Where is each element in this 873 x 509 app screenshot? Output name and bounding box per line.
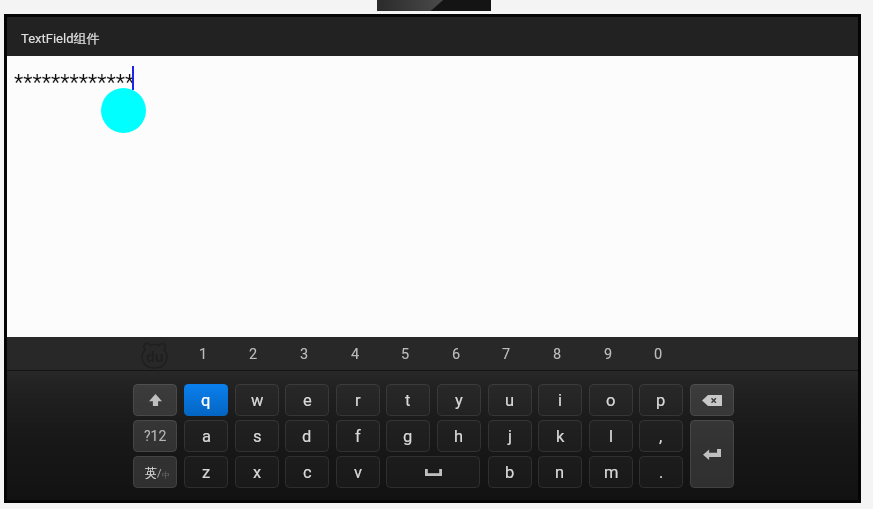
staticText: 5: [401, 346, 410, 363]
button[interactable]: l: [589, 420, 633, 452]
staticText: TextField组件: [21, 30, 100, 46]
staticText: h: [454, 427, 464, 446]
staticText: /: [157, 467, 162, 480]
staticText: 4: [351, 346, 360, 363]
staticText: a: [202, 427, 211, 446]
staticText: 中: [162, 470, 170, 480]
staticText: e: [303, 391, 312, 410]
button[interactable]: 8: [532, 337, 583, 371]
button[interactable]: o: [589, 384, 633, 416]
staticText: 1: [199, 346, 208, 363]
staticText: s: [253, 427, 262, 446]
staticText: 3: [300, 346, 309, 363]
staticText: .: [659, 463, 664, 482]
button[interactable]: v: [336, 456, 380, 488]
staticText: g: [403, 427, 413, 446]
button[interactable]: x: [235, 456, 279, 488]
button[interactable]: Shift: [133, 384, 177, 416]
staticText: 9: [604, 346, 613, 363]
button[interactable]: j: [488, 420, 532, 452]
staticText: c: [303, 463, 312, 482]
staticText: t: [405, 391, 411, 410]
button[interactable]: Enter: [690, 420, 734, 488]
button[interactable]: *************: [7, 56, 858, 337]
button[interactable]: g: [386, 420, 430, 452]
button[interactable]: Switch language: [133, 456, 177, 488]
button[interactable]: b: [488, 456, 532, 488]
staticText: o: [606, 391, 616, 410]
button[interactable]: 3: [279, 337, 330, 371]
button[interactable]: c: [285, 456, 329, 488]
button[interactable]: t: [386, 384, 430, 416]
staticText: 6: [452, 346, 461, 363]
button[interactable]: 1: [178, 337, 229, 371]
button[interactable]: ,: [639, 420, 683, 452]
staticText: p: [656, 391, 666, 410]
staticText: 英: [145, 465, 157, 480]
staticText: *************: [14, 70, 135, 95]
button[interactable]: TextField组件: [7, 17, 858, 56]
button[interactable]: h: [437, 420, 481, 452]
staticText: q: [201, 391, 211, 410]
staticText: ,: [659, 427, 663, 446]
button[interactable]: d: [285, 420, 329, 452]
staticText: v: [354, 463, 362, 482]
staticText: u: [505, 391, 515, 410]
button[interactable]: a: [184, 420, 228, 452]
button[interactable]: u: [488, 384, 532, 416]
staticText: i: [558, 391, 563, 410]
button[interactable]: 9: [583, 337, 634, 371]
button[interactable]: i: [538, 384, 582, 416]
staticText: z: [202, 463, 211, 482]
button[interactable]: 0: [633, 337, 684, 371]
button[interactable]: s: [235, 420, 279, 452]
button[interactable]: 5: [380, 337, 431, 371]
button[interactable]: p: [639, 384, 683, 416]
button[interactable]: Symbols: [133, 420, 177, 452]
button[interactable]: 6: [431, 337, 482, 371]
button[interactable]: y: [437, 384, 481, 416]
staticText: n: [555, 463, 565, 482]
button[interactable]: .: [639, 456, 683, 488]
staticText: d: [302, 427, 312, 446]
button[interactable]: e: [285, 384, 329, 416]
staticText: 0: [654, 346, 663, 363]
button[interactable]: w: [235, 384, 279, 416]
staticText: 7: [502, 346, 511, 363]
button[interactable]: z: [184, 456, 228, 488]
button[interactable]: 4: [330, 337, 381, 371]
staticText: j: [508, 427, 512, 446]
button[interactable]: m: [589, 456, 633, 488]
staticText: m: [604, 463, 619, 482]
button[interactable]: q: [184, 384, 228, 416]
button[interactable]: r: [336, 384, 380, 416]
staticText: ?12: [144, 428, 167, 444]
staticText: f: [355, 427, 361, 446]
staticText: k: [556, 427, 565, 446]
staticText: x: [253, 463, 262, 482]
button[interactable]: k: [538, 420, 582, 452]
staticText: b: [505, 463, 515, 482]
staticText: r: [355, 391, 361, 410]
button[interactable]: 7: [481, 337, 532, 371]
button[interactable]: Space: [386, 456, 480, 488]
staticText: w: [251, 391, 264, 410]
staticText: 8: [553, 346, 562, 363]
staticText: du: [146, 347, 164, 366]
button[interactable]: f: [336, 420, 380, 452]
button[interactable]: 2: [228, 337, 279, 371]
staticText: l: [609, 427, 614, 446]
staticText: 2: [249, 346, 258, 363]
staticText: y: [455, 391, 463, 410]
button[interactable]: n: [538, 456, 582, 488]
button[interactable]: Backspace: [690, 384, 734, 416]
